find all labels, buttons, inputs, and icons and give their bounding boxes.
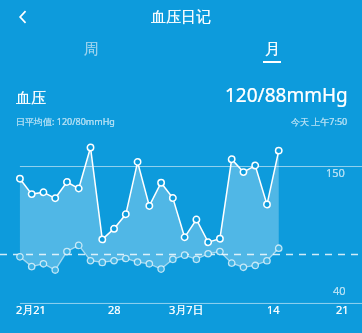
staticText: 28 <box>108 302 121 317</box>
staticText: 120/88mmHg <box>225 82 348 108</box>
staticText: 2月21 <box>16 302 46 317</box>
staticText: 血压日记 <box>151 8 211 27</box>
button[interactable]: 周 <box>0 36 181 66</box>
staticText: 3月7日 <box>169 302 204 317</box>
staticText: 月 <box>265 40 280 59</box>
staticText: 日平均值: 120/80mmHg <box>16 115 115 127</box>
staticText: 血压 <box>16 89 46 108</box>
staticText: 14 <box>267 302 280 317</box>
staticText: 150 <box>326 165 345 180</box>
button[interactable]: 月 <box>181 36 362 66</box>
staticText: 40 <box>333 283 346 298</box>
staticText: 21 <box>336 302 349 317</box>
staticText: 今天 上午7:50 <box>291 115 348 127</box>
staticText: 周 <box>84 40 99 59</box>
button[interactable]: Back <box>6 0 40 34</box>
